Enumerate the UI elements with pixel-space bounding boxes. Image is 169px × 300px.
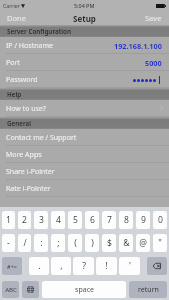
button[interactable]: 5 xyxy=(68,211,82,229)
button[interactable]: space xyxy=(42,281,126,298)
button[interactable]: Password xyxy=(0,71,169,88)
button[interactable]: : xyxy=(34,234,48,252)
staticText: / xyxy=(23,237,27,249)
staticText: #+= xyxy=(7,263,17,270)
button[interactable]: Contact me / Support xyxy=(0,129,169,146)
button[interactable]: ? xyxy=(73,257,94,275)
staticText: - xyxy=(7,237,10,249)
button[interactable]: IP / Hostname xyxy=(0,37,169,54)
staticText: @ xyxy=(139,237,147,249)
staticText: 9 xyxy=(141,214,146,226)
button[interactable]: Port xyxy=(0,54,169,71)
staticText: 2 xyxy=(22,214,27,226)
staticText: return xyxy=(138,285,159,295)
staticText: 192.168.1.100 xyxy=(114,41,162,51)
button[interactable]: 4 xyxy=(51,211,65,229)
button[interactable]: Share i-Pointer xyxy=(0,163,169,180)
button[interactable]: - xyxy=(2,234,15,252)
button[interactable]: 6 xyxy=(85,211,99,229)
button[interactable]: Save xyxy=(138,11,169,25)
button[interactable]: @ xyxy=(136,234,150,252)
staticText: 0 xyxy=(158,214,163,226)
staticText: ' xyxy=(129,260,131,272)
staticText: " xyxy=(158,237,162,249)
staticText: Rate i-Pointer xyxy=(6,184,51,194)
staticText: $ xyxy=(107,237,112,249)
staticText: 1 xyxy=(6,214,11,226)
button[interactable]: How to use? xyxy=(0,100,169,117)
staticText: , xyxy=(60,260,63,272)
staticText: : xyxy=(40,237,43,249)
staticText: 8 xyxy=(124,214,129,226)
staticText: 3 xyxy=(39,214,44,226)
button[interactable]: , xyxy=(51,257,71,275)
button[interactable]: ; xyxy=(51,234,65,252)
staticText: 5 xyxy=(73,214,78,226)
staticText: Save xyxy=(145,13,162,23)
staticText: space xyxy=(75,285,94,295)
button[interactable]: Rate i-Pointer xyxy=(0,180,169,197)
button[interactable]: More Apps xyxy=(0,146,169,163)
button[interactable]: ABC xyxy=(2,281,19,298)
button[interactable]: ) xyxy=(85,234,99,252)
staticText: ( xyxy=(74,237,77,249)
button[interactable]: 1 xyxy=(2,211,15,229)
button[interactable]: Change keyboard xyxy=(22,281,39,298)
staticText: More Apps xyxy=(6,150,42,160)
button[interactable]: 0 xyxy=(153,211,167,229)
button[interactable]: return xyxy=(129,281,167,298)
staticText: & xyxy=(123,237,130,249)
staticText: Port xyxy=(6,58,20,68)
button[interactable]: 7 xyxy=(102,211,116,229)
staticText: How to use? xyxy=(6,104,46,114)
button[interactable]: $ xyxy=(102,234,116,252)
staticText: ? xyxy=(82,260,86,272)
staticText: Carrier xyxy=(3,2,20,9)
button[interactable]: ' xyxy=(119,257,140,275)
button[interactable]: 9 xyxy=(136,211,150,229)
staticText: 5:04 PM xyxy=(74,2,95,9)
button[interactable]: ! xyxy=(96,257,117,275)
staticText: ) xyxy=(91,237,94,249)
staticText: . xyxy=(38,260,41,272)
button[interactable]: / xyxy=(18,234,31,252)
staticText: 5000 xyxy=(145,58,162,68)
button[interactable]: 3 xyxy=(34,211,48,229)
button[interactable]: Backspace xyxy=(147,257,167,275)
button[interactable]: Done xyxy=(0,11,33,25)
button[interactable]: . xyxy=(29,257,49,275)
staticText: IP / Hostname xyxy=(6,41,53,51)
staticText: 7 xyxy=(107,214,112,226)
staticText: ! xyxy=(105,260,108,272)
staticText: 6 xyxy=(90,214,95,226)
button[interactable]: " xyxy=(153,234,167,252)
staticText: ; xyxy=(57,237,60,249)
staticText: 4 xyxy=(56,214,61,226)
staticText: ABC xyxy=(5,286,17,294)
staticText: General xyxy=(7,119,32,128)
staticText: Contact me / Support xyxy=(6,133,77,143)
staticText: Server Configuration xyxy=(7,27,71,36)
staticText: Done xyxy=(7,13,26,23)
staticText: Password xyxy=(6,75,38,85)
staticText: Setup xyxy=(73,13,96,24)
button[interactable]: 2 xyxy=(18,211,31,229)
staticText: Share i-Pointer xyxy=(6,167,55,177)
staticText: Help xyxy=(7,90,22,99)
button[interactable]: 8 xyxy=(119,211,133,229)
button[interactable]: & xyxy=(119,234,133,252)
button[interactable]: #+= xyxy=(2,257,22,275)
button[interactable]: ( xyxy=(68,234,82,252)
